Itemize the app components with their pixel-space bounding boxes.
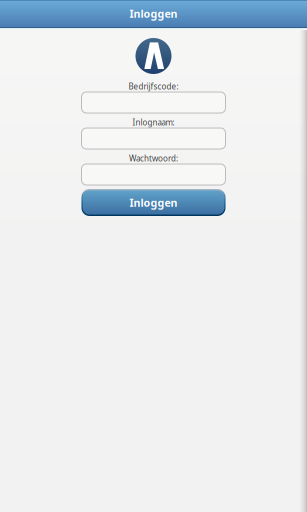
staticText: Bedrijfscode:	[128, 81, 178, 92]
staticText: Inloggen	[129, 6, 177, 21]
staticText: Wachtwoord:	[129, 153, 178, 164]
staticText: Inlognaam:	[132, 117, 174, 128]
button[interactable]: Inloggen	[81, 189, 225, 216]
staticText: Inloggen	[129, 195, 177, 210]
